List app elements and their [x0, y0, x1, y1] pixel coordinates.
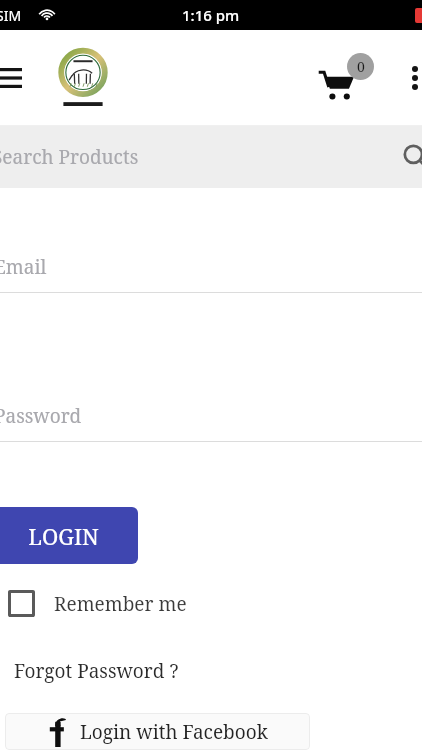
button[interactable]: Login with Facebook	[5, 713, 310, 750]
staticText: 0	[357, 57, 365, 76]
staticText: LOGIN	[28, 521, 99, 551]
staticText: Email	[0, 254, 47, 280]
button[interactable]: Swasth Food Products logo	[46, 41, 120, 115]
button[interactable]: LOGIN	[0, 507, 138, 564]
button[interactable]: Open navigation menu	[0, 56, 31, 100]
button[interactable]: Forgot Password ?	[14, 658, 179, 684]
staticText: 1:16 pm	[182, 5, 240, 25]
staticText: Login with Facebook	[80, 719, 268, 745]
other: Search	[396, 137, 422, 177]
button[interactable]: Shopping cart, 0 items	[316, 51, 374, 109]
staticText: Search Products	[0, 144, 139, 170]
button[interactable]: Remember me	[0, 590, 187, 617]
staticText: SIM	[0, 6, 22, 25]
staticText: Remember me	[54, 591, 187, 617]
staticText: Password	[0, 403, 82, 429]
button[interactable]: More options	[394, 57, 422, 99]
staticText: Forgot Password ?	[14, 658, 179, 684]
button[interactable]: Search Products	[0, 126, 422, 188]
